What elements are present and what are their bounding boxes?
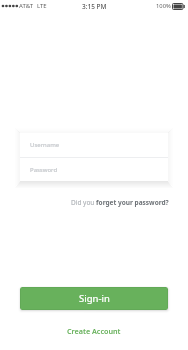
staticText: Password xyxy=(30,166,58,174)
staticText: Sign-in xyxy=(79,292,110,305)
staticText: LTE xyxy=(37,2,47,10)
staticText: 3:15 PM xyxy=(82,2,107,11)
staticText: Did you forget your password? xyxy=(71,198,169,207)
staticText: Username xyxy=(30,141,60,149)
button[interactable]: Sign-in xyxy=(20,287,168,310)
button[interactable]: Username xyxy=(20,133,168,157)
staticText: 100% xyxy=(156,2,171,10)
other: Battery xyxy=(172,3,185,10)
button[interactable]: Password xyxy=(20,158,168,181)
button[interactable]: Create Account xyxy=(0,324,188,338)
staticText: AT&T xyxy=(19,2,33,10)
staticText: Create Account xyxy=(67,326,121,336)
button[interactable]: Did you forget your password? xyxy=(0,196,169,208)
